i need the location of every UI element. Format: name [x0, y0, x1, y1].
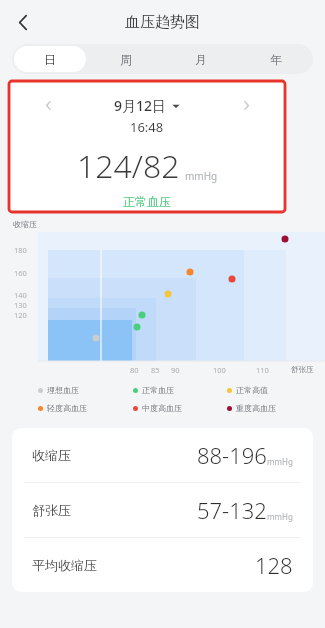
staticText: mmHg — [185, 169, 218, 183]
staticText: 128 — [255, 550, 293, 580]
staticText: 130 — [14, 300, 27, 310]
staticText: 正常血压 — [123, 194, 171, 209]
button[interactable]: 9月12日 — [59, 96, 235, 115]
staticText: 理想血压 — [47, 385, 79, 395]
button[interactable]: 舒张压 — [12, 483, 313, 537]
staticText: 周 — [120, 52, 132, 67]
button[interactable]: 周 — [90, 46, 161, 72]
staticText: 90 — [171, 365, 180, 375]
button[interactable]: Previous — [37, 94, 59, 116]
button[interactable]: 日 — [14, 46, 86, 72]
button[interactable]: 月 — [165, 46, 236, 72]
button[interactable]: Next — [235, 94, 257, 116]
staticText: 收缩压 — [13, 219, 37, 229]
staticText: 16:48 — [130, 118, 164, 136]
button[interactable]: 年 — [240, 46, 311, 72]
staticText: 轻度高血压 — [47, 403, 87, 413]
staticText: 160 — [14, 268, 27, 278]
staticText: 舒张压 — [291, 365, 314, 374]
button[interactable]: Back — [4, 3, 42, 41]
staticText: 110 — [256, 365, 269, 375]
staticText: 9月12日 — [114, 96, 167, 115]
staticText: 正常高值 — [236, 385, 268, 395]
staticText: 85 — [151, 365, 160, 375]
staticText: 舒张压 — [32, 502, 71, 518]
staticText: 收缩压 — [32, 447, 71, 463]
button[interactable]: 收缩压 — [12, 428, 313, 482]
staticText: 平均收缩压 — [32, 557, 97, 573]
staticText: 正常血压 — [142, 385, 174, 395]
staticText: 年 — [270, 52, 282, 67]
staticText: 血压趋势图 — [125, 13, 200, 32]
staticText: 140 — [14, 290, 27, 300]
staticText: 120 — [14, 310, 27, 320]
staticText: 57-132 — [197, 495, 267, 525]
staticText: 日 — [44, 52, 56, 67]
staticText: 重度高血压 — [236, 403, 276, 413]
button[interactable]: 平均收缩压 — [12, 538, 313, 592]
staticText: 124/82 — [77, 144, 180, 188]
staticText: 月 — [195, 52, 207, 67]
staticText: 中度高血压 — [142, 403, 182, 413]
staticText: 180 — [14, 245, 27, 255]
staticText: mmHg — [267, 511, 293, 522]
staticText: 88-196 — [197, 440, 267, 470]
staticText: 80 — [130, 365, 139, 375]
staticText: mmHg — [267, 456, 293, 467]
staticText: 100 — [213, 365, 226, 375]
